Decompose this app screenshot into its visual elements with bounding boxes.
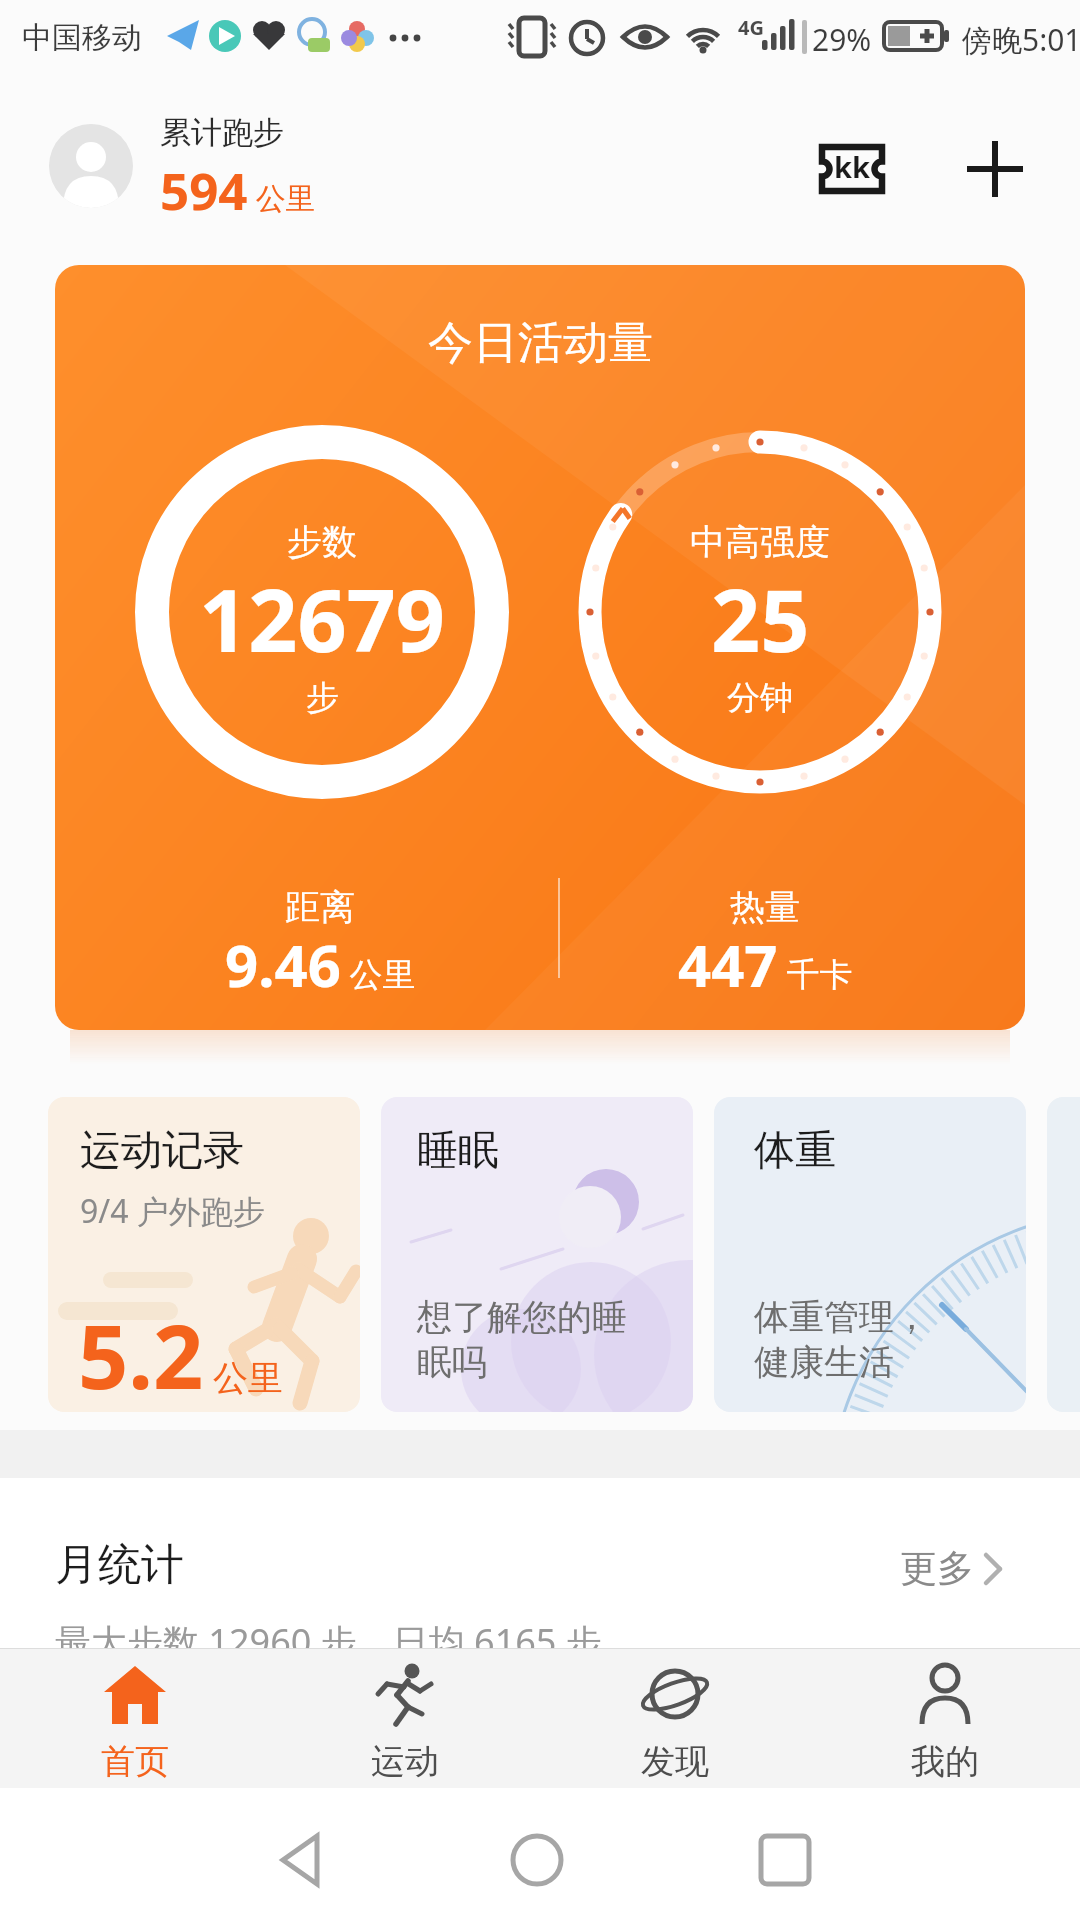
staticText: 累计跑步 <box>160 113 284 152</box>
staticText: 傍晚5:01 <box>962 19 1080 60</box>
button[interactable]: 体重 <box>714 1097 1026 1412</box>
staticText: 睡眠 <box>417 1125 499 1177</box>
staticText: 公里 <box>248 177 316 218</box>
staticText: 今日活动量 <box>428 315 653 372</box>
staticText: 分钟 <box>727 677 793 719</box>
staticText: 594 <box>160 155 248 224</box>
staticText: 更多 <box>900 1545 974 1592</box>
button[interactable]: 运动记录 <box>48 1097 360 1412</box>
staticText: 千卡 <box>778 951 853 996</box>
button[interactable] <box>725 1798 845 1910</box>
button[interactable]: 睡眠 <box>381 1097 693 1412</box>
button[interactable]: 首页 <box>35 1648 235 1788</box>
staticText: 体重 <box>754 1125 836 1177</box>
staticText: 4G <box>738 14 764 41</box>
button[interactable] <box>49 124 133 208</box>
staticText: 我的 <box>911 1740 979 1783</box>
staticText: 步数 <box>287 520 357 564</box>
staticText: 月统计 <box>55 1538 184 1592</box>
button[interactable] <box>250 1798 370 1910</box>
staticText: 中国移动 <box>22 19 142 57</box>
button[interactable]: 今日活动量 <box>55 265 1025 1030</box>
staticText: kk <box>834 147 870 186</box>
staticText: 5.2 <box>78 1295 204 1412</box>
staticText: 想了解您的睡 眠吗 <box>417 1295 627 1385</box>
staticText: 体重管理， 健康生活 <box>754 1295 929 1385</box>
staticText: 29% <box>812 19 872 60</box>
button[interactable]: 发现 <box>575 1648 775 1788</box>
staticText: 首页 <box>101 1740 169 1783</box>
staticText: 步 <box>306 677 339 719</box>
staticText: 运动记录 <box>80 1125 244 1177</box>
staticText: 447 <box>678 925 778 1004</box>
staticText: 公里 <box>341 951 416 996</box>
staticText: 25 <box>711 560 810 677</box>
button[interactable] <box>958 132 1032 206</box>
staticText: 中高强度 <box>690 520 830 564</box>
button[interactable]: kk <box>815 140 889 198</box>
staticText: 9/4 户外跑步 <box>80 1189 265 1233</box>
staticText: 公里 <box>204 1353 284 1401</box>
staticText: 9.46 <box>225 925 341 1004</box>
staticText: 距离 <box>285 885 355 929</box>
staticText: 热量 <box>730 885 800 929</box>
staticText: 12679 <box>199 560 445 677</box>
staticText: 运动 <box>371 1740 439 1783</box>
button[interactable]: 更多 <box>900 1545 1014 1592</box>
button[interactable]: 运动 <box>305 1648 505 1788</box>
button[interactable]: 我的 <box>845 1648 1045 1788</box>
staticText: 发现 <box>641 1740 709 1783</box>
button[interactable] <box>477 1798 597 1910</box>
staticText: 最大步数 12960 步，日均 6165 步 <box>55 1617 602 1666</box>
